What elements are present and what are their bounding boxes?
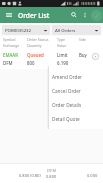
button[interactable]: Order Details [49, 98, 103, 112]
button[interactable]: Cancel Order [49, 84, 103, 98]
staticText: Type [57, 37, 79, 42]
staticText: Buy [79, 52, 101, 58]
staticText: Amend Order [52, 74, 82, 80]
button[interactable]: Detail Quote [49, 112, 103, 126]
staticText: 0.000 [87, 173, 98, 178]
button[interactable]: Order actions [91, 52, 99, 60]
staticText: All Orders [55, 27, 76, 33]
staticText: Order Details [52, 102, 82, 108]
staticText: POB0035232 [5, 27, 32, 33]
staticText: 0.800 (0.80) [19, 173, 41, 178]
staticText: Quantity [27, 43, 57, 48]
staticText: Value [57, 43, 79, 48]
staticText: DFM [47, 168, 57, 173]
staticText: Order Status [27, 37, 57, 42]
staticText: Cancel Order [52, 88, 81, 94]
staticText: 6.190 [57, 60, 79, 66]
button[interactable]: Search [68, 7, 79, 23]
button[interactable]: POB0035232 [2, 25, 50, 35]
button[interactable]: Amend Order [49, 70, 103, 84]
button[interactable]: More options [79, 7, 90, 23]
staticText: Limit [57, 52, 79, 58]
button[interactable]: 0.800 (0.80) [0, 164, 103, 183]
staticText: 0.800 [46, 174, 57, 179]
button[interactable]: Refresh [90, 7, 103, 23]
staticText: Order List [18, 11, 50, 20]
button[interactable]: All Orders [52, 25, 101, 35]
staticText: DFM [3, 60, 27, 66]
staticText: 800 [27, 60, 57, 66]
staticText: Symbol [3, 37, 27, 42]
staticText: Side [79, 37, 101, 42]
staticText: Queued [27, 52, 57, 58]
staticText: Exchange [3, 43, 27, 48]
button[interactable]: Open navigation drawer [0, 7, 18, 23]
staticText: Detail Quote [52, 116, 80, 122]
staticText: EMAAR [3, 52, 27, 58]
button[interactable]: Symbol [0, 36, 103, 69]
